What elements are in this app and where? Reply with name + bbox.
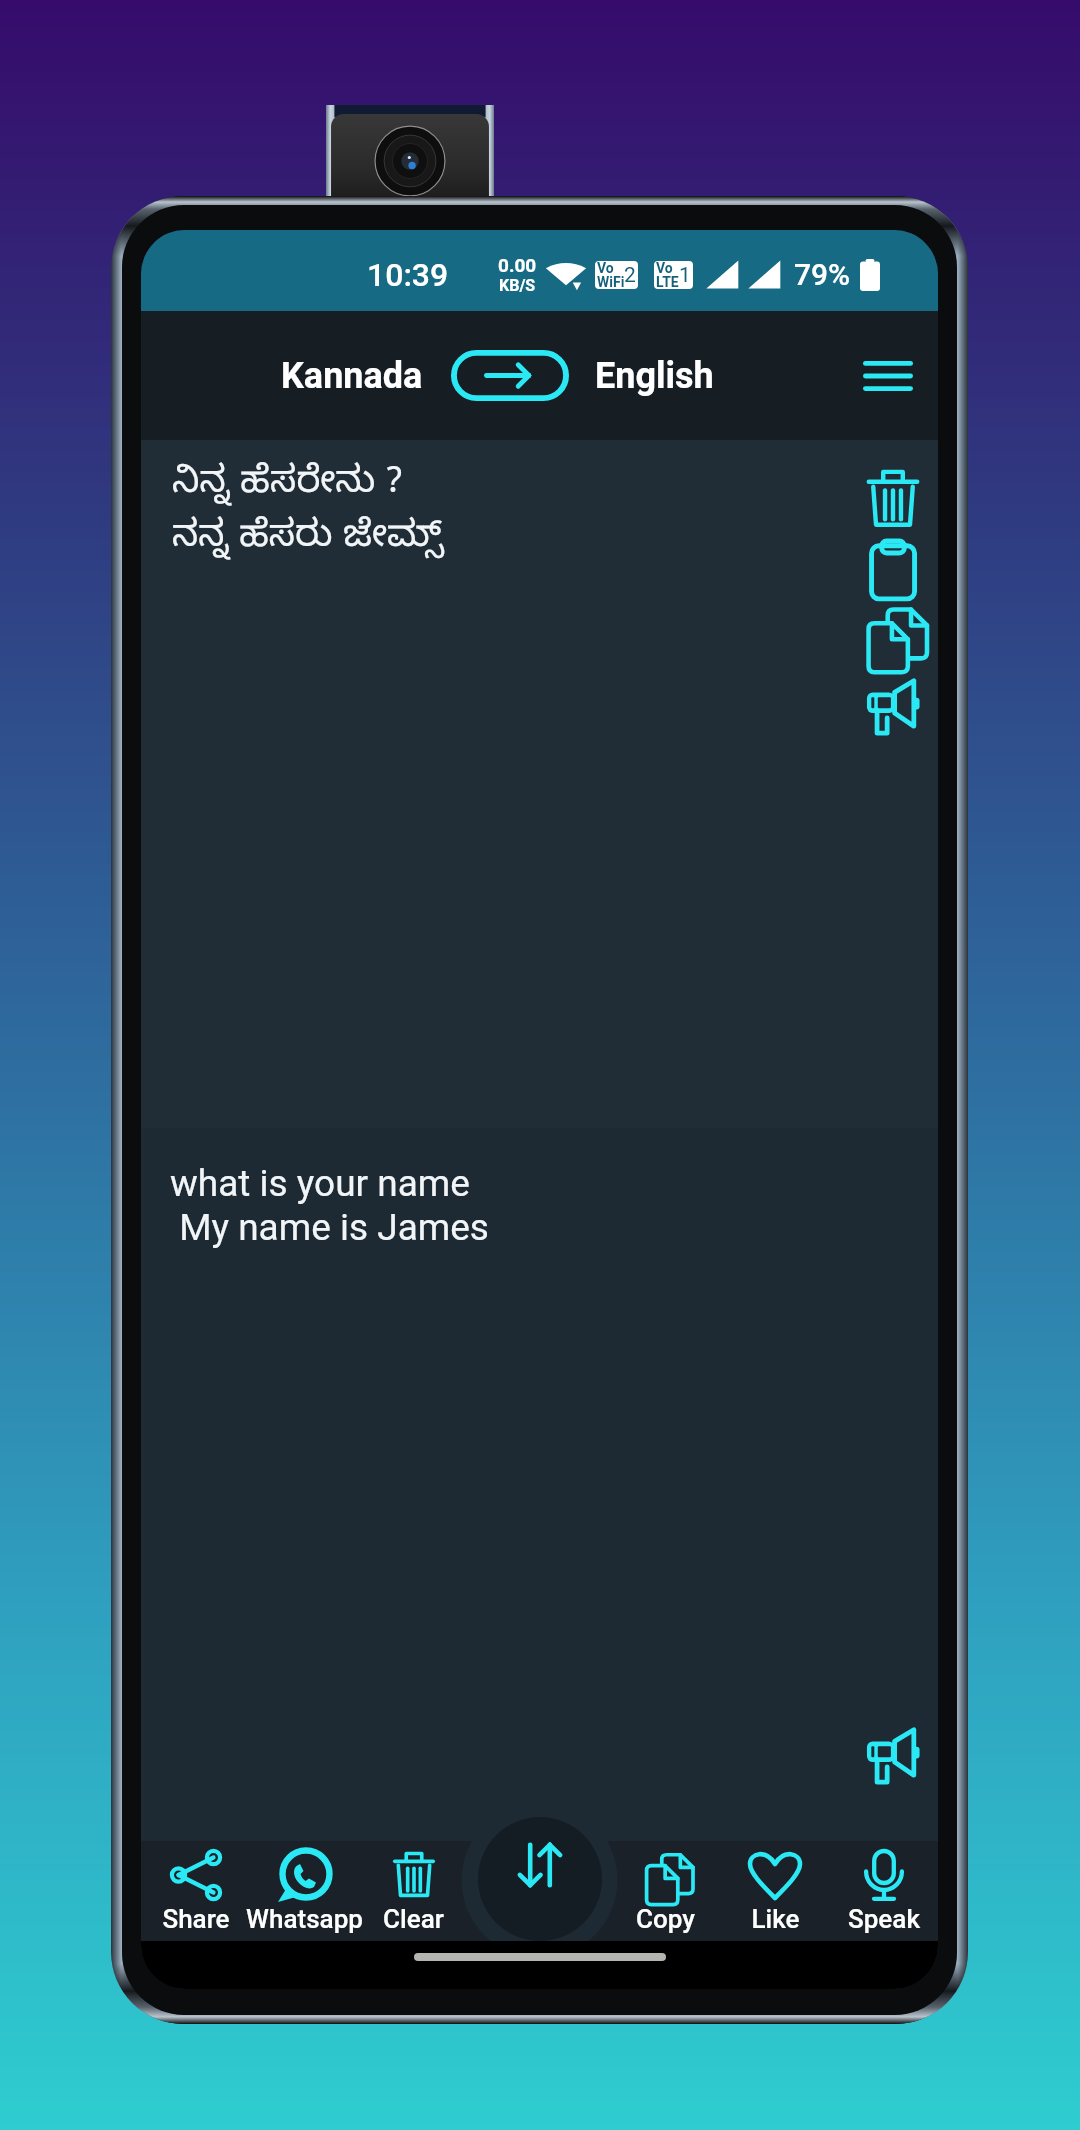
- staticText: Whatsapp: [246, 1904, 363, 1934]
- button[interactable]: Speak source: [859, 669, 927, 737]
- button[interactable]: Share: [141, 1841, 250, 1941]
- staticText: LTE: [656, 274, 679, 289]
- button[interactable]: Swap translation direction: [478, 1817, 602, 1941]
- button[interactable]: Whatsapp: [250, 1841, 359, 1941]
- button[interactable]: Kannada: [281, 355, 423, 397]
- button[interactable]: Delete: [859, 465, 927, 533]
- staticText: Like: [751, 1904, 800, 1934]
- staticText: Vo: [656, 261, 673, 276]
- staticText: WiFi: [597, 274, 625, 289]
- staticText: 0.00: [498, 254, 537, 276]
- button[interactable]: Paste: [859, 533, 927, 601]
- button[interactable]: English: [595, 355, 714, 397]
- staticText: Vo: [597, 261, 614, 276]
- button[interactable]: Menu: [844, 332, 932, 420]
- button[interactable]: Copy: [859, 601, 927, 669]
- staticText: Share: [162, 1904, 230, 1934]
- staticText: 10:39: [367, 256, 449, 294]
- staticText: Clear: [383, 1904, 444, 1934]
- staticText: 1: [679, 263, 691, 288]
- staticText: Copy: [636, 1904, 695, 1934]
- button[interactable]: Copy: [611, 1841, 720, 1941]
- button[interactable]: Speak: [829, 1841, 938, 1941]
- staticText: what is your name My name is James: [170, 1162, 489, 1249]
- staticText: Speak: [848, 1904, 920, 1934]
- staticText: 2: [624, 263, 636, 288]
- staticText: 79%: [794, 257, 851, 292]
- button[interactable]: Speak translation: [859, 1718, 927, 1786]
- staticText: KB/S: [499, 276, 536, 295]
- staticText: ನಿನ್ನ ಹೆಸರೇನು ? ನನ್ನ ಹೆಸರು ಜೇಮ್ಸ್: [172, 462, 443, 566]
- button[interactable]: Like: [720, 1841, 829, 1941]
- button[interactable]: Clear: [359, 1841, 468, 1941]
- button[interactable]: Swap languages: [451, 350, 569, 401]
